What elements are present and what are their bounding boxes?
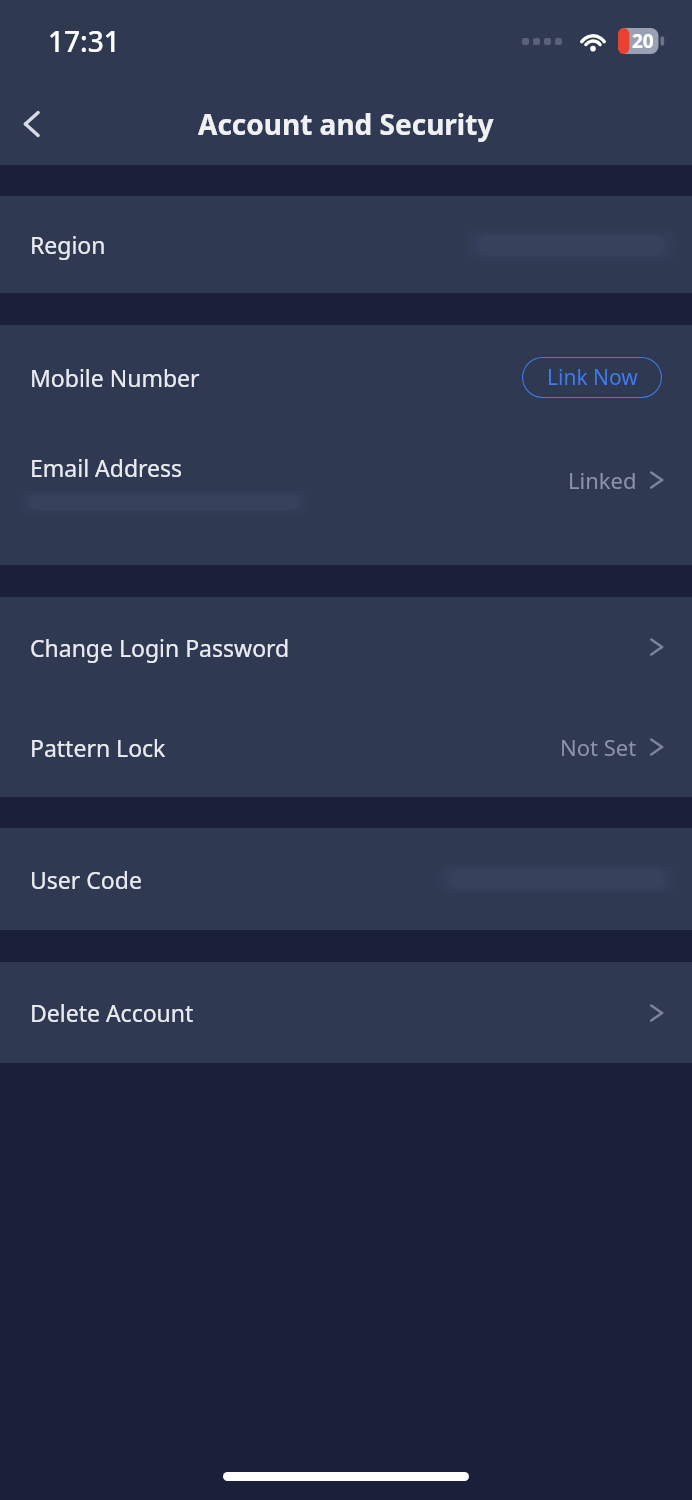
- button[interactable]: User Code: [0, 828, 692, 930]
- staticText: User Code: [30, 864, 142, 895]
- staticText: Pattern Lock: [30, 732, 166, 763]
- button[interactable]: Mobile Number: [0, 325, 692, 429]
- button[interactable]: Pattern Lock: [0, 697, 692, 797]
- button[interactable]: Email Address: [0, 429, 692, 565]
- staticText: Linked: [568, 465, 637, 495]
- button[interactable]: Link Now: [522, 357, 662, 398]
- staticText: Change Login Password: [30, 632, 290, 663]
- staticText: Region: [30, 229, 106, 260]
- staticText: Delete Account: [30, 997, 194, 1028]
- button[interactable]: Back: [0, 92, 64, 156]
- button[interactable]: Region: [0, 196, 692, 293]
- staticText: Mobile Number: [30, 362, 200, 393]
- staticText: Not Set: [560, 732, 637, 762]
- button[interactable]: Delete Account: [0, 962, 692, 1063]
- staticText: 20: [632, 28, 654, 54]
- button[interactable]: Change Login Password: [0, 597, 692, 697]
- staticText: Email Address: [30, 452, 183, 483]
- staticText: Account and Security: [198, 105, 494, 143]
- staticText: Link Now: [547, 363, 638, 392]
- staticText: 17:31: [48, 22, 120, 60]
